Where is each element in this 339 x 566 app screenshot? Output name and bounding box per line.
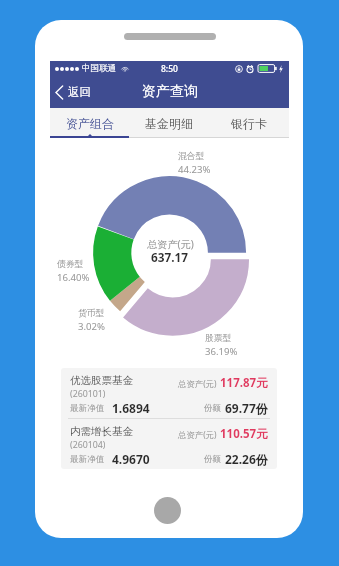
staticText: 优选股票基金 [70,374,133,387]
staticText: 1.6894 [112,400,150,416]
staticText: 8:50 [161,63,178,75]
staticText: 返回 [68,85,91,99]
staticText: 货币型 [78,308,105,319]
staticText: 内需增长基金 [70,425,133,438]
staticText: 银行卡 [231,116,267,131]
staticText: 混合型 [178,151,205,162]
staticText: 22.26份 [225,451,268,467]
button[interactable]: 返回 [50,81,97,103]
button[interactable]: 优选股票基金 [61,368,277,418]
staticText: 44.23% [178,163,211,176]
staticText: 债券型 [57,259,84,270]
staticText: 总资产(元) [147,237,194,251]
staticText: (260101) [70,388,106,400]
staticText: 份额 [204,403,222,414]
staticText: 117.87元 [220,375,268,391]
staticText: 最新净值 [70,403,105,414]
staticText: 中国联通 [82,63,117,74]
staticText: 36.19% [205,345,238,358]
button[interactable]: 资产组合 [50,108,129,138]
button[interactable]: 内需增长基金 [61,419,277,469]
staticText: 份额 [204,454,222,465]
staticText: 110.57元 [220,426,268,442]
button[interactable]: 基金明细 [129,108,209,138]
staticText: (260104) [70,439,106,451]
button[interactable]: 银行卡 [209,108,289,138]
staticText: 最新净值 [70,454,105,465]
staticText: 资产组合 [66,116,114,131]
staticText: 总资产(元) [178,429,217,440]
staticText: 637.17 [151,249,189,265]
staticText: 股票型 [205,333,232,344]
staticText: 资产查询 [142,83,198,101]
staticText: 16.40% [57,271,90,284]
staticText: 4.9670 [112,451,150,467]
staticText: 总资产(元) [178,378,217,389]
staticText: 基金明细 [145,116,193,131]
staticText: 3.02% [78,320,106,333]
staticText: 69.77份 [225,400,268,416]
